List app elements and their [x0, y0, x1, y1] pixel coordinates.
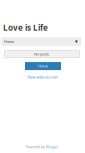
- staticText: Powered by: [26, 145, 46, 149]
- staticText: .: [58, 145, 59, 149]
- staticText: Home: [38, 63, 48, 69]
- button[interactable]: View web version: [0, 74, 85, 80]
- staticText: Home: [4, 39, 14, 44]
- button[interactable]: Blogger: [46, 145, 58, 149]
- staticText: Blogger: [46, 145, 58, 149]
- button[interactable]: Home: [25, 62, 61, 70]
- staticText: No posts.: [34, 51, 50, 57]
- staticText: View web version: [27, 74, 57, 80]
- staticText: ▼: [75, 40, 78, 44]
- staticText: Love is Life: [3, 22, 48, 33]
- button[interactable]: Home: [1, 37, 81, 46]
